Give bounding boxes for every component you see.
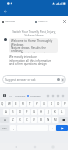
button[interactable]: J xyxy=(45,109,51,115)
button[interactable]: N xyxy=(45,117,51,123)
staticText: T xyxy=(29,102,31,106)
staticText: B xyxy=(40,118,42,122)
button[interactable]: Shift xyxy=(0,117,9,123)
button[interactable]: , xyxy=(10,125,16,131)
staticText: Q xyxy=(1,102,4,106)
staticText: O xyxy=(57,102,60,106)
button[interactable]: I xyxy=(48,101,54,107)
staticText: Compose xyxy=(30,94,41,97)
staticText: Adobe Ac xyxy=(38,20,48,23)
staticText: Aa xyxy=(9,94,12,97)
button[interactable]: Settings xyxy=(55,93,60,98)
staticText: K xyxy=(54,110,56,114)
button[interactable]: Send xyxy=(56,125,68,131)
button[interactable]: Z xyxy=(10,117,16,123)
staticText: G xyxy=(33,110,36,114)
staticText: H xyxy=(40,110,43,114)
staticText: A xyxy=(5,110,7,114)
button[interactable]: T xyxy=(27,101,33,107)
staticText: L xyxy=(61,110,63,114)
button[interactable]: Backspace xyxy=(59,117,68,123)
button[interactable]: ?123 xyxy=(0,125,9,131)
button[interactable]: S xyxy=(10,109,16,115)
button[interactable]: Stickers xyxy=(45,93,50,98)
button[interactable]: A xyxy=(3,109,9,115)
staticText: F xyxy=(26,110,28,114)
staticText: . xyxy=(52,126,53,130)
button[interactable]: Back xyxy=(12,143,19,150)
button[interactable]: U xyxy=(41,101,47,107)
button[interactable]: Voice input xyxy=(60,93,65,98)
button[interactable]: Recents xyxy=(49,143,56,150)
staticText: R xyxy=(22,102,24,106)
button[interactable]: Messages xyxy=(2,20,16,23)
button[interactable]: Adobe Ac xyxy=(35,20,48,23)
button[interactable]: G xyxy=(31,109,37,115)
staticText: J xyxy=(48,110,49,114)
button[interactable]: Q xyxy=(0,101,5,107)
button[interactable]: Home xyxy=(31,143,38,150)
button[interactable]: P xyxy=(62,101,68,107)
staticText: Suggest answer or ask xyxy=(5,78,36,82)
staticText: W xyxy=(8,102,11,106)
staticText: X xyxy=(19,118,21,122)
button[interactable]: GIF xyxy=(50,93,55,98)
button[interactable]: Back xyxy=(0,7,10,16)
staticText: Y xyxy=(36,102,38,106)
staticText: S xyxy=(12,110,14,114)
button[interactable]: H xyxy=(38,109,44,115)
staticText: P xyxy=(64,102,66,106)
button[interactable]: E xyxy=(13,101,19,107)
button[interactable]: D xyxy=(17,109,23,115)
staticText: D xyxy=(19,110,22,114)
staticText: V xyxy=(33,118,35,122)
staticText: Messages xyxy=(5,20,16,23)
button[interactable]: . xyxy=(49,125,55,131)
button[interactable]: K xyxy=(52,109,58,115)
staticText: Switch Your Travelly Post, Injury, Volta… xyxy=(7,30,61,36)
button[interactable]: Close xyxy=(60,16,68,26)
button[interactable]: M xyxy=(52,117,58,123)
staticText: Z xyxy=(12,118,14,122)
staticText: Translate xyxy=(15,94,27,97)
button[interactable]: C xyxy=(24,117,30,123)
button[interactable]: V xyxy=(31,117,37,123)
staticText: N xyxy=(47,118,50,122)
button[interactable]: Suggest answer or ask xyxy=(5,75,65,84)
staticText: I xyxy=(51,102,52,106)
button[interactable]: Clipboard xyxy=(2,93,7,98)
staticText: C xyxy=(26,118,28,122)
button[interactable]: W xyxy=(6,101,12,107)
button[interactable]: Y xyxy=(34,101,40,107)
button[interactable]: O xyxy=(55,101,61,107)
button[interactable]: R xyxy=(20,101,26,107)
staticText: We mostly introduce information all this… xyxy=(9,55,52,65)
staticText: M xyxy=(54,118,57,122)
staticText: Welcome to Home Thoroughly Windows Natur… xyxy=(11,39,56,53)
button[interactable]: F xyxy=(24,109,30,115)
button[interactable]: B xyxy=(38,117,44,123)
staticText: ?123 xyxy=(2,127,7,130)
button[interactable]: L xyxy=(59,109,65,115)
staticText: E xyxy=(15,102,17,106)
staticText: , xyxy=(13,126,14,130)
staticText: U xyxy=(43,102,46,106)
button[interactable]: X xyxy=(17,117,23,123)
